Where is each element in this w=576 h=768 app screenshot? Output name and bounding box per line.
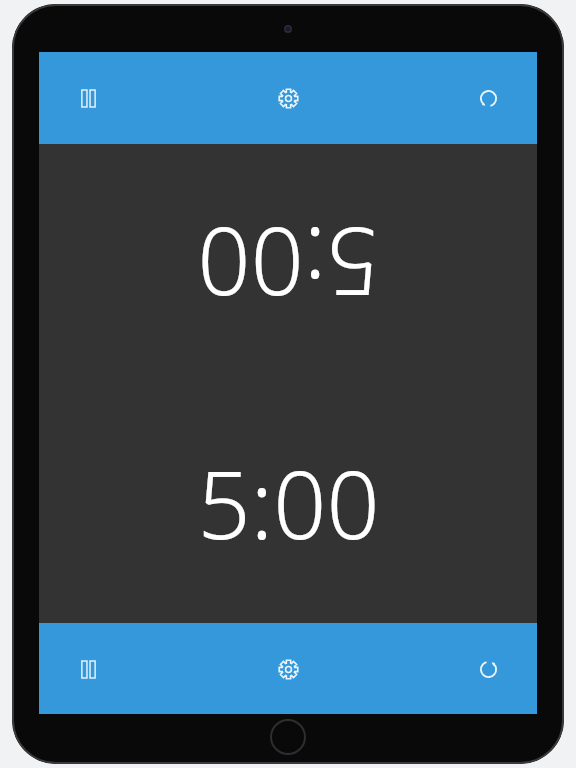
- button[interactable]: Reset: [461, 71, 515, 125]
- button[interactable]: Pause: [61, 642, 115, 696]
- button[interactable]: Reset: [461, 642, 515, 696]
- staticText: 5:00: [197, 440, 380, 567]
- button[interactable]: Settings: [261, 642, 315, 696]
- button[interactable]: Settings: [261, 71, 315, 125]
- button[interactable]: 5:00: [39, 144, 537, 383]
- staticText: 5:00: [197, 200, 380, 327]
- button[interactable]: Pause: [61, 71, 115, 125]
- button[interactable]: 5:00: [39, 383, 537, 623]
